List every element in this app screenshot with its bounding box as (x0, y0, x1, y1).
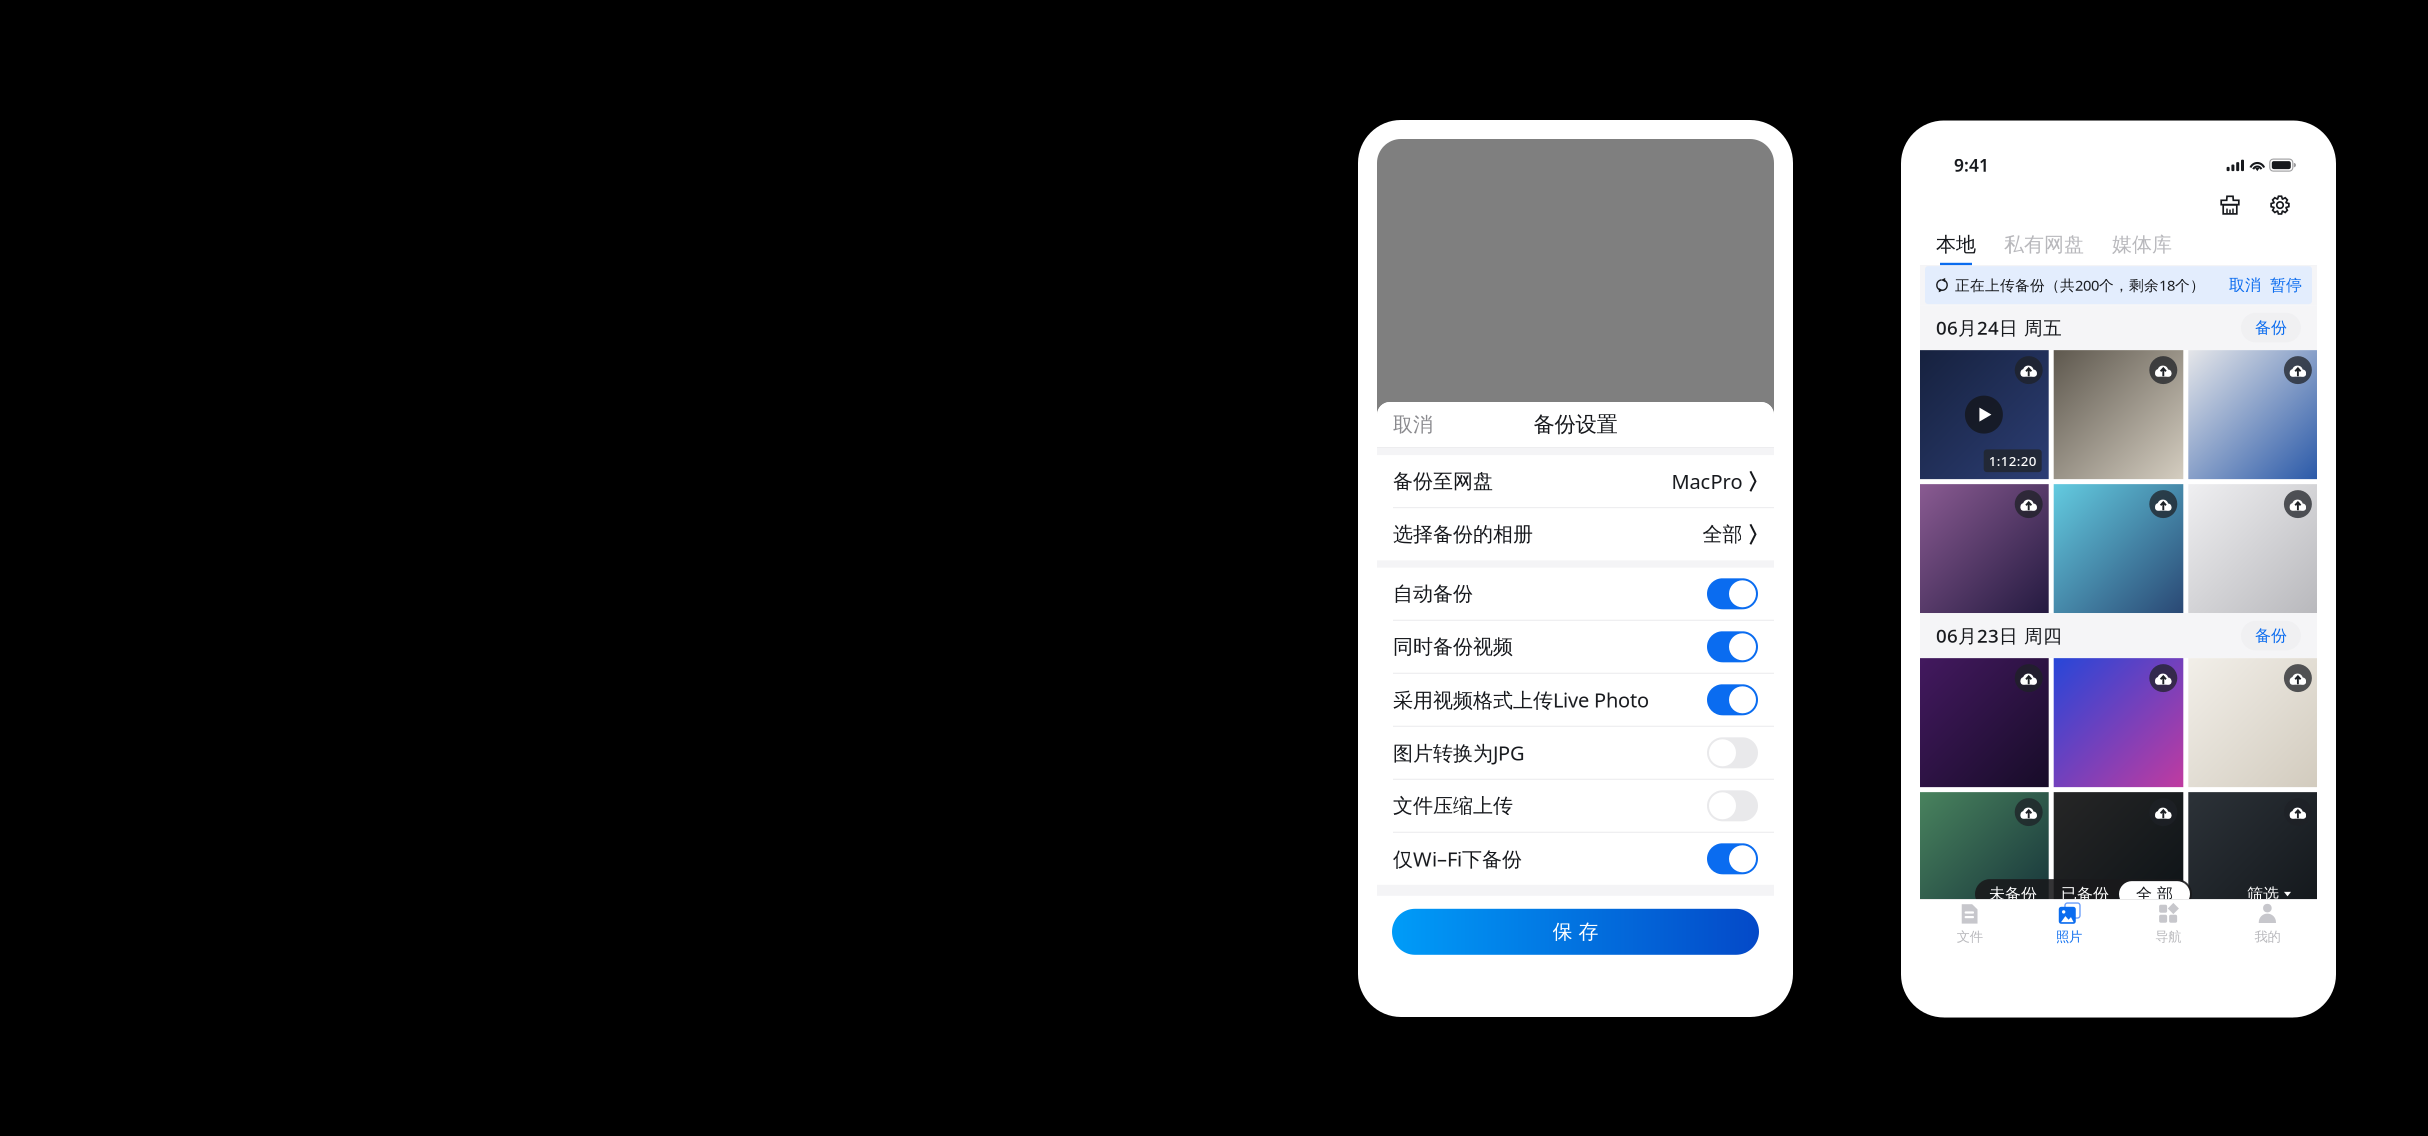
staticText: 图片转换为JPG (1393, 739, 1525, 766)
button[interactable]: 全 部 (2119, 881, 2190, 907)
staticText: 文件 (1957, 929, 1983, 945)
button[interactable]: 未备份 (1975, 879, 2051, 909)
button[interactable]: 采用视频格式上传Live Photo (1377, 674, 1774, 726)
button[interactable]: 照片 (2019, 898, 2118, 950)
button[interactable]: 取消 (2229, 275, 2261, 295)
staticText: 保 存 (1552, 919, 1598, 944)
staticText: 暂停 (2270, 275, 2302, 295)
button[interactable]: 备份 (2241, 621, 2301, 650)
button[interactable]: 保 存 (1392, 909, 1759, 955)
button[interactable]: 备份至网盘 (1377, 455, 1774, 507)
button[interactable]: 选择备份的相册 (1377, 508, 1774, 560)
button[interactable]: 私有网盘 (1976, 232, 2084, 266)
button[interactable]: 已备份 (2051, 879, 2119, 909)
staticText: 媒体库 (2112, 232, 2172, 257)
button[interactable]: 设置 (2264, 189, 2296, 221)
button[interactable]: 本地 (1936, 232, 1976, 266)
staticText: 导航 (2155, 929, 2181, 945)
button[interactable] (2188, 792, 2318, 921)
button[interactable]: 暂停 (2261, 275, 2302, 295)
button[interactable]: 清理 (2214, 189, 2246, 221)
staticText: 备份设置 (1533, 411, 1617, 438)
staticText: MacPro (1671, 468, 1742, 495)
button[interactable]: 备份 (2241, 313, 2301, 342)
button[interactable] (2054, 792, 2183, 921)
button[interactable] (2188, 484, 2318, 613)
staticText: 1:12:20 (1989, 452, 2037, 470)
staticText: 备份 (2255, 626, 2287, 645)
staticText: 全 部 (2136, 884, 2173, 904)
staticText: 06月23日 周四 (1936, 623, 2062, 648)
button[interactable]: 自动备份 (1377, 568, 1774, 620)
button[interactable] (1919, 792, 2049, 921)
button[interactable]: 1:12:20 (1919, 350, 2049, 479)
button[interactable] (2188, 350, 2318, 479)
staticText: 采用视频格式上传Live Photo (1393, 686, 1649, 713)
button[interactable]: 筛选 (2247, 879, 2291, 909)
staticText: 未备份 (1989, 884, 2037, 904)
staticText: 本地 (1936, 232, 1976, 257)
staticText: 备份至网盘 (1393, 469, 1493, 494)
button[interactable] (2054, 350, 2183, 479)
staticText: 取消 (2229, 275, 2261, 295)
button[interactable] (2054, 484, 2183, 613)
staticText: 仅Wi–Fi下备份 (1393, 845, 1522, 872)
button[interactable]: 文件压缩上传 (1377, 780, 1774, 832)
button[interactable]: 文件 (1920, 898, 2019, 950)
staticText: 正在上传备份（共200个，剩余18个） (1955, 275, 2205, 295)
staticText: 照片 (2056, 929, 2082, 945)
staticText: 取消 (1393, 412, 1433, 437)
staticText: 已备份 (2061, 884, 2109, 904)
staticText: 备份 (2255, 318, 2287, 337)
staticText: 文件压缩上传 (1393, 793, 1513, 818)
button[interactable]: 媒体库 (2084, 232, 2172, 266)
button[interactable]: 仅Wi–Fi下备份 (1377, 833, 1774, 885)
button[interactable] (2188, 658, 2318, 787)
staticText: 我的 (2254, 929, 2280, 945)
button[interactable]: 导航 (2118, 898, 2218, 950)
staticText: 自动备份 (1393, 581, 1473, 606)
staticText: 筛选 (2247, 884, 2279, 904)
staticText: 选择备份的相册 (1393, 522, 1533, 547)
staticText: 全部 (1702, 522, 1742, 547)
staticText: 私有网盘 (2004, 232, 2084, 257)
button[interactable] (2054, 658, 2183, 787)
staticText: 同时备份视频 (1393, 634, 1513, 659)
button[interactable]: 同时备份视频 (1377, 621, 1774, 673)
staticText: 9:41 (1954, 154, 1989, 177)
button[interactable]: 图片转换为JPG (1377, 727, 1774, 779)
button[interactable]: 取消 (1377, 402, 1449, 447)
button[interactable]: 我的 (2218, 898, 2317, 950)
button[interactable] (1919, 484, 2049, 613)
button[interactable] (1919, 658, 2049, 787)
staticText: 06月24日 周五 (1936, 315, 2062, 340)
